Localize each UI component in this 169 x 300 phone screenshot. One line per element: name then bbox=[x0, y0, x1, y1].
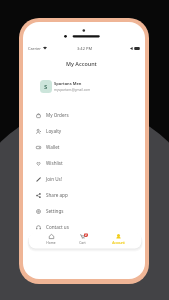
staticText: Spartans Men bbox=[54, 81, 82, 86]
button[interactable]: Account bbox=[109, 234, 127, 244]
button[interactable]: Share app bbox=[23, 187, 145, 203]
staticText: Wallet bbox=[46, 144, 60, 150]
staticText: myspartans@gmail.com bbox=[54, 88, 91, 92]
button[interactable]: Cart bbox=[73, 234, 91, 244]
button[interactable]: Wishlist bbox=[23, 155, 145, 171]
staticText: Join Us! bbox=[46, 176, 63, 182]
staticText: Cart bbox=[79, 240, 86, 244]
staticText: Contact us bbox=[46, 224, 69, 230]
button[interactable]: My Orders bbox=[23, 107, 145, 123]
button[interactable]: Contact us bbox=[23, 219, 145, 235]
staticText: Wishlist bbox=[46, 160, 63, 166]
staticText: Account bbox=[112, 240, 125, 244]
staticText: 3:42 PM bbox=[77, 46, 93, 51]
staticText: Carrier bbox=[28, 46, 42, 51]
staticText: Share app bbox=[46, 192, 68, 198]
staticText: S bbox=[44, 83, 48, 91]
button[interactable]: Home bbox=[42, 234, 60, 244]
button[interactable]: Join Us! bbox=[23, 171, 145, 187]
staticText: Settings bbox=[46, 208, 64, 214]
staticText: My Account bbox=[66, 60, 97, 67]
staticText: Loyalty bbox=[46, 128, 62, 134]
button[interactable]: S bbox=[23, 79, 145, 94]
staticText: 2 bbox=[85, 233, 87, 237]
staticText: My Orders bbox=[46, 112, 69, 118]
button[interactable]: Wallet bbox=[23, 139, 145, 155]
button[interactable]: Settings bbox=[23, 203, 145, 219]
button[interactable]: Loyalty bbox=[23, 123, 145, 139]
staticText: Home bbox=[46, 240, 56, 244]
